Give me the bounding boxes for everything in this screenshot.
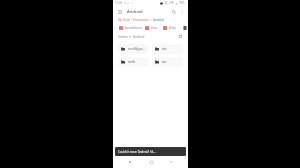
button[interactable]: Back [126,158,134,166]
staticText: 11:41 [115,1,123,5]
staticText: Spreadsheets [125,26,143,30]
button[interactable]: More file types [183,26,187,30]
button[interactable]: eve.dfkjgov.hi… [118,44,149,54]
staticText: eve.dfkjgov.hi… [128,47,146,51]
staticText: > [150,18,152,22]
button[interactable]: Docs [145,26,158,30]
button[interactable]: stuffs [118,57,149,67]
staticText: Android [153,18,164,22]
button[interactable]: Home [147,158,155,166]
button[interactable]: Spreadsheets [119,26,143,30]
staticText: 78% [179,1,185,5]
button[interactable]: Recent apps [167,158,175,166]
staticText: Android [127,9,143,15]
staticText: Couldn't move 'Android' fol… [118,150,156,154]
button[interactable]: My Drive > Documents [118,18,149,22]
staticText: Folders in "Android" [118,35,145,39]
staticText: site [162,47,167,51]
button[interactable]: site [152,44,183,54]
button[interactable]: More options [178,8,186,16]
button[interactable]: Switch to list view [178,34,183,39]
staticText: 4G [164,1,168,5]
button[interactable]: Couldn't move 'Android' fol… [115,147,186,156]
button[interactable]: Slides [163,26,177,30]
button[interactable]: Search [169,7,178,16]
staticText: LTE [169,1,174,5]
staticText: My Drive > Documents [118,18,149,22]
button[interactable]: abc [152,57,183,67]
staticText: stuffs [128,60,136,64]
staticText: Slides [169,26,177,30]
button[interactable]: Navigation menu [115,7,124,16]
staticText: abc [162,60,167,64]
staticText: Docs [151,26,158,30]
